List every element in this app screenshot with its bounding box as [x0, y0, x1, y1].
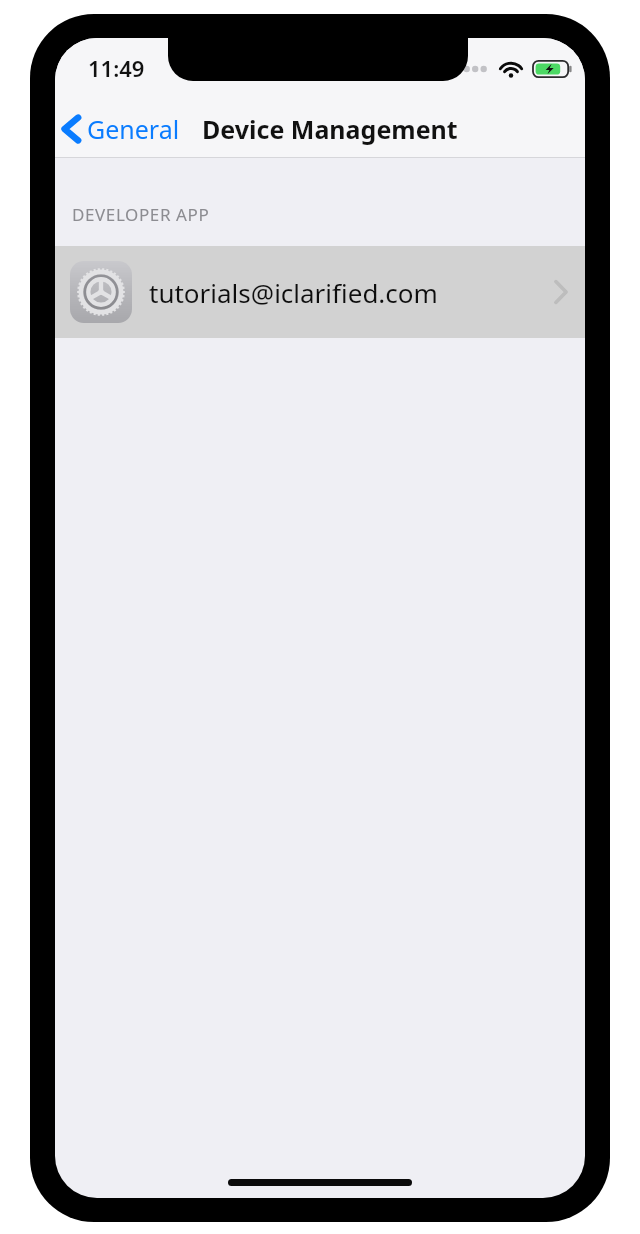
button[interactable]: Back — [55, 106, 190, 152]
staticText: DEVELOPER APP — [72, 203, 210, 226]
button[interactable]: tutorials@iclarified.com — [55, 246, 585, 338]
staticText: General — [87, 112, 180, 146]
staticText: Device Management — [202, 112, 458, 146]
staticText: tutorials@iclarified.com — [149, 275, 553, 310]
other: Back — [61, 114, 83, 144]
staticText: 11:49 — [88, 53, 145, 83]
